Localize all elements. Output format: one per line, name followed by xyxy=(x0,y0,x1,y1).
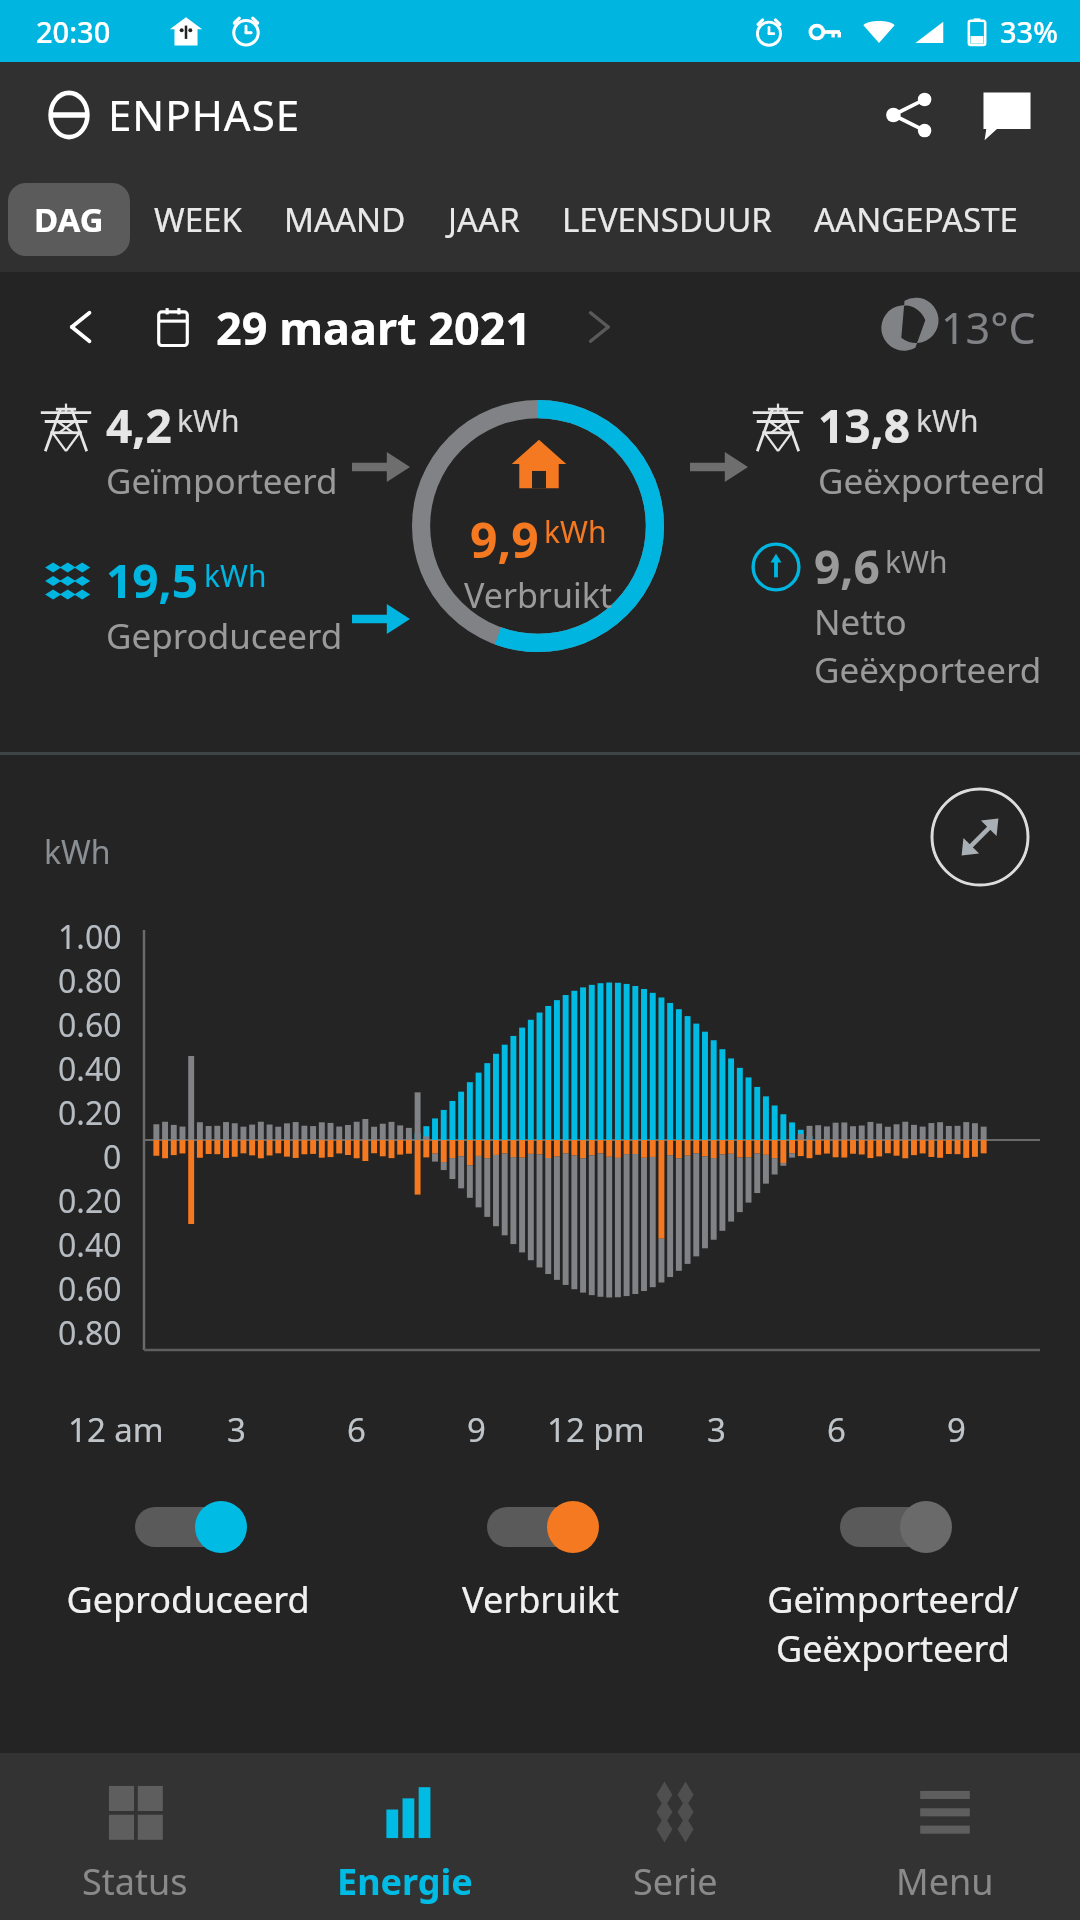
staticText: 0.80 xyxy=(58,959,122,1003)
staticText: 6 xyxy=(827,1407,846,1452)
button[interactable]: Share xyxy=(870,76,948,154)
staticText: 0.40 xyxy=(58,1223,122,1267)
staticText: kWh xyxy=(177,400,240,441)
staticText: 29 maart 2021 xyxy=(216,297,532,358)
staticText: 9,6 xyxy=(814,535,880,598)
staticText: 13,8 xyxy=(818,394,911,457)
button[interactable]: Geïmporteerd/ Geëxporteerd xyxy=(728,1495,1058,1679)
staticText: 4,2 xyxy=(106,394,172,457)
button[interactable]: MAAND xyxy=(266,183,424,256)
staticText: 0.60 xyxy=(58,1267,122,1311)
staticText: Status xyxy=(82,1857,188,1906)
button[interactable]: Expand chart xyxy=(930,787,1030,887)
button[interactable]: WEEK xyxy=(136,183,260,256)
staticText: Serie xyxy=(633,1857,718,1906)
staticText: 0 xyxy=(103,1135,122,1179)
staticText: 0.20 xyxy=(58,1091,122,1135)
staticText: 9,9 xyxy=(470,507,539,572)
staticText: 9 xyxy=(947,1407,966,1452)
staticText: AANGEPASTE xyxy=(814,197,1018,242)
staticText: kWh xyxy=(204,555,267,596)
staticText: kWh xyxy=(44,830,111,874)
staticText: Verbruikt xyxy=(464,572,613,618)
staticText: 0.80 xyxy=(58,1311,122,1355)
staticText: kWh xyxy=(885,541,948,582)
staticText: Menu xyxy=(896,1857,994,1906)
staticText: DAG xyxy=(34,197,104,242)
button[interactable]: DAG xyxy=(8,183,130,256)
button[interactable]: Next day xyxy=(566,295,630,359)
staticText: 33% xyxy=(1000,12,1058,51)
staticText: Netto xyxy=(814,598,907,646)
button[interactable]: Energie xyxy=(270,1753,540,1920)
staticText: ENPHASE xyxy=(108,86,301,143)
button[interactable]: Geproduceerd xyxy=(23,1495,353,1630)
staticText: 0.40 xyxy=(58,1047,122,1091)
staticText: 19,5 xyxy=(106,549,199,612)
staticText: LEVENSDUUR xyxy=(562,197,772,242)
staticText: Geïmporteerd xyxy=(106,457,338,505)
staticText: JAAR xyxy=(448,197,520,242)
staticText: 0.20 xyxy=(58,1179,122,1223)
staticText: kWh xyxy=(916,400,979,441)
staticText: 3 xyxy=(227,1407,246,1452)
staticText: MAAND xyxy=(284,197,406,242)
staticText: Energie xyxy=(337,1857,473,1906)
staticText: Geëxporteerd xyxy=(814,646,1042,694)
staticText: 6 xyxy=(347,1407,366,1452)
staticText: Geproduceerd xyxy=(106,612,343,660)
button[interactable]: Previous day xyxy=(50,295,114,359)
staticText: 20:30 xyxy=(36,12,111,51)
staticText: Geïmporteerd/ Geëxporteerd xyxy=(767,1575,1019,1673)
button[interactable]: Help xyxy=(968,76,1046,154)
button[interactable]: LEVENSDUUR xyxy=(544,183,790,256)
staticText: kWh xyxy=(544,511,607,552)
staticText: Geëxporteerd xyxy=(818,457,1046,505)
staticText: WEEK xyxy=(154,197,242,242)
staticText: 1.00 xyxy=(58,915,122,959)
button[interactable]: Status xyxy=(0,1753,270,1920)
button[interactable]: AANGEPASTE xyxy=(796,183,1036,256)
staticText: 12 pm xyxy=(547,1407,645,1452)
button[interactable]: JAAR xyxy=(430,183,538,256)
staticText: 12 am xyxy=(68,1407,164,1452)
button[interactable]: Verbruikt xyxy=(375,1495,705,1630)
staticText: 3 xyxy=(707,1407,726,1452)
staticText: 9 xyxy=(467,1407,486,1452)
staticText: 0.60 xyxy=(58,1003,122,1047)
staticText: 13°C xyxy=(941,298,1036,357)
button[interactable]: Menu xyxy=(810,1753,1080,1920)
button[interactable]: Serie xyxy=(540,1753,810,1920)
staticText: Verbruikt xyxy=(462,1575,619,1624)
staticText: Geproduceerd xyxy=(66,1575,310,1624)
